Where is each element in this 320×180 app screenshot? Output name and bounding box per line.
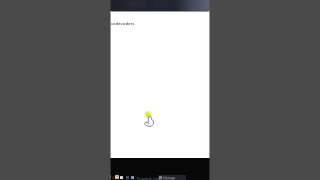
staticText: Research Graph Demo — [137, 176, 175, 180]
button[interactable]: App — [131, 176, 134, 179]
button[interactable] — [110, 0, 210, 11]
button[interactable]: codecoders — [111, 21, 135, 27]
button[interactable]: Browser — [126, 176, 129, 179]
button[interactable]: Notes — [120, 176, 123, 179]
button[interactable]: Pointer — [142, 108, 154, 127]
button[interactable]: File explorer — [115, 175, 119, 179]
staticText: Settings — [163, 176, 176, 180]
button[interactable]: Settings — [159, 176, 162, 179]
button[interactable]: Settings window — [158, 175, 186, 180]
